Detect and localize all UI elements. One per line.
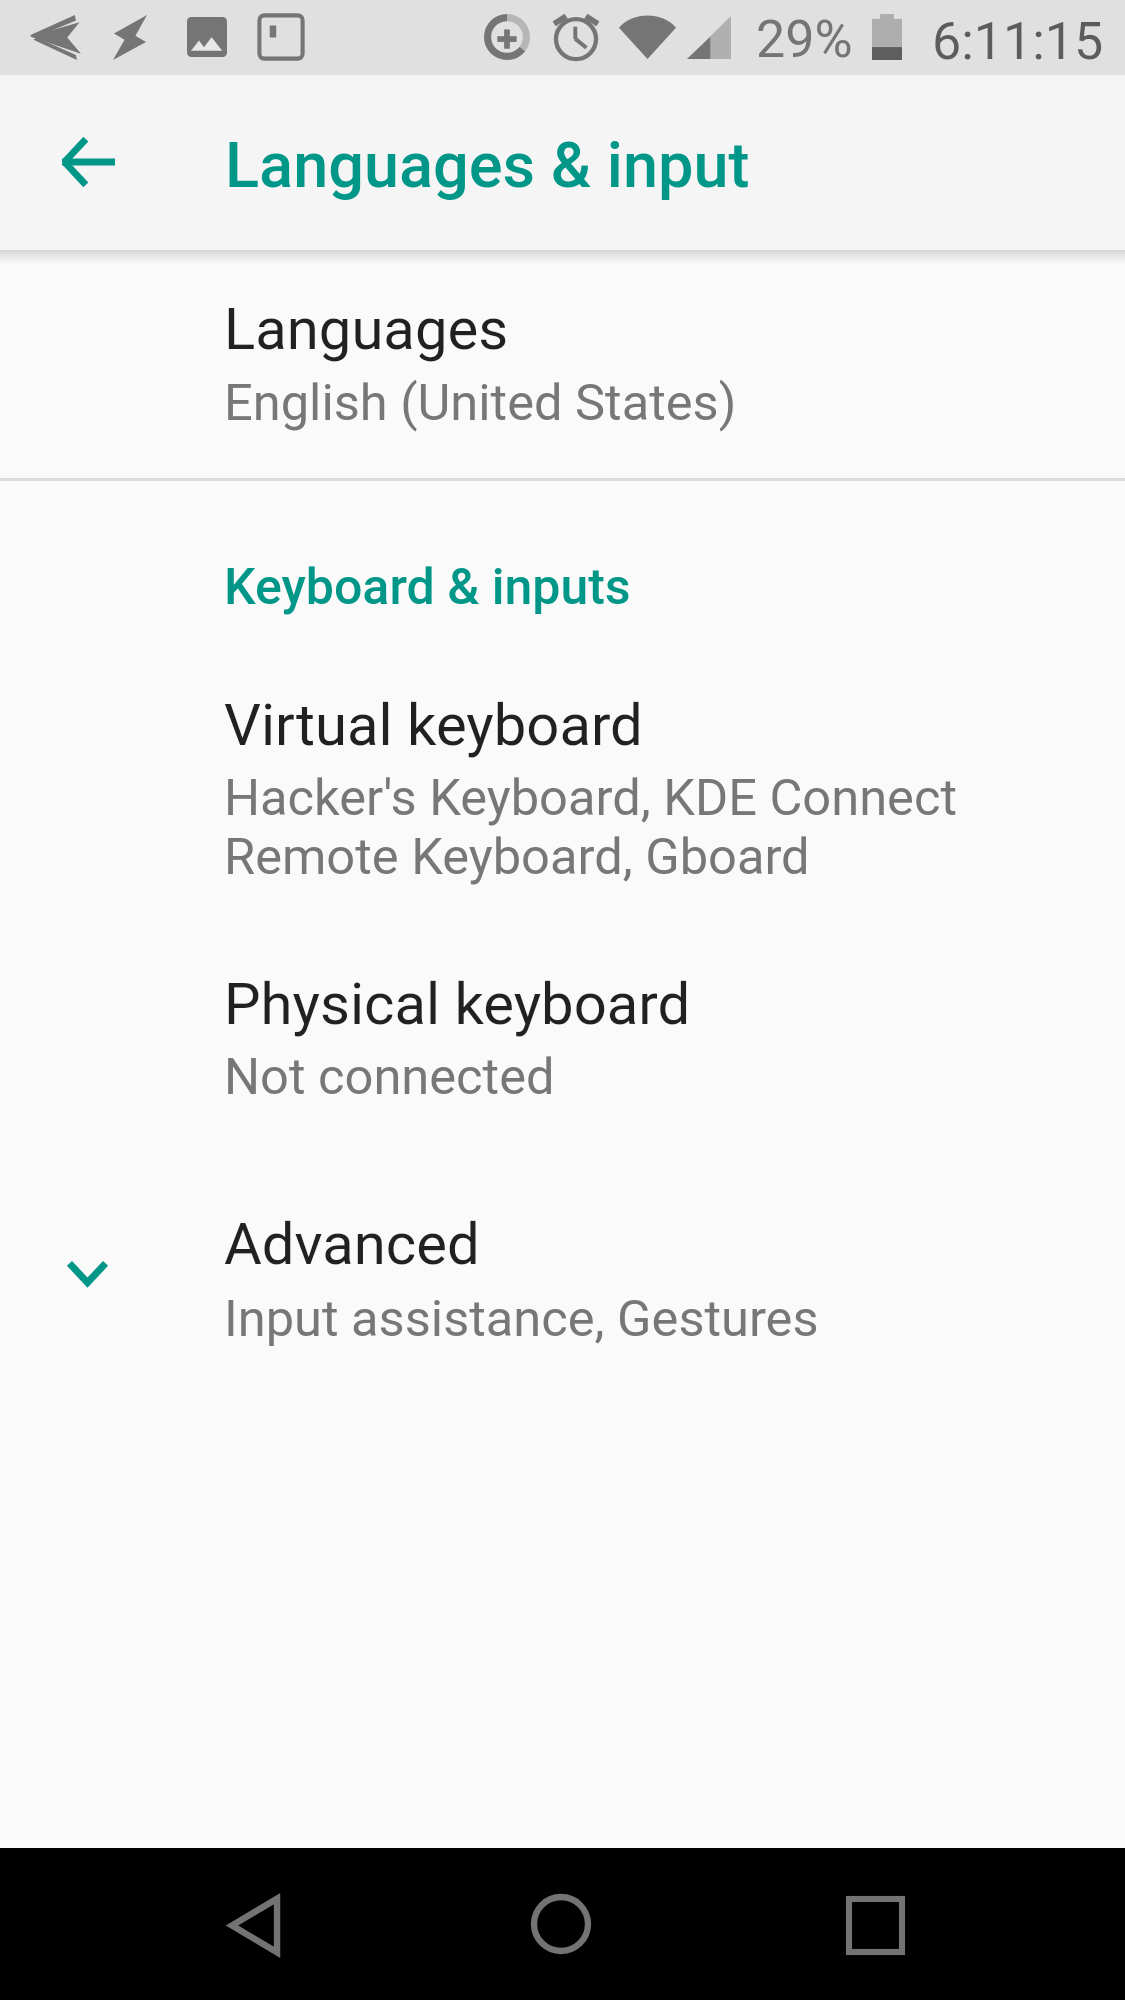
- button[interactable]: Languages: [0, 250, 1125, 478]
- staticText: Languages & input: [225, 129, 750, 203]
- staticText: English (United States): [224, 373, 737, 432]
- staticText: 29%: [756, 9, 853, 70]
- staticText: Hacker's Keyboard, KDE Connect Remote Ke…: [224, 768, 957, 886]
- button[interactable]: Virtual keyboard: [0, 662, 1125, 932]
- button[interactable]: Physical keyboard: [0, 941, 1125, 1136]
- button[interactable]: Back: [199, 1870, 309, 1980]
- staticText: Languages: [224, 295, 509, 363]
- staticText: Not connected: [224, 1047, 555, 1106]
- button[interactable]: Advanced: [0, 1181, 1125, 1377]
- staticText: Virtual keyboard: [224, 691, 643, 759]
- button[interactable]: Navigate up: [30, 104, 146, 220]
- staticText: 6:11:15: [932, 11, 1104, 72]
- staticText: Input assistance, Gestures: [224, 1289, 819, 1348]
- staticText: Keyboard & inputs: [224, 558, 631, 617]
- staticText: Advanced: [224, 1210, 480, 1278]
- button[interactable]: Home: [506, 1869, 616, 1979]
- staticText: Physical keyboard: [224, 970, 691, 1038]
- button[interactable]: Recent apps: [820, 1870, 930, 1980]
